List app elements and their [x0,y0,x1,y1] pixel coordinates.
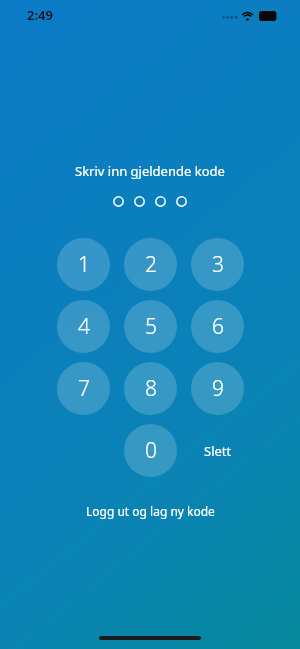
button[interactable]: Logg ut og lag ny kode [78,499,223,523]
button[interactable]: Slett [191,424,244,477]
staticText: 9 [212,374,224,403]
staticText: 6 [212,312,224,341]
staticText: 2:49 [27,6,53,24]
staticText: 5 [145,312,157,341]
staticText: 4 [78,312,90,341]
button[interactable]: 0 [124,424,177,477]
button[interactable]: 6 [191,300,244,353]
button[interactable]: 1 [57,238,110,291]
button[interactable]: 4 [57,300,110,353]
staticText: 2 [145,250,157,279]
staticText: 0 [145,436,157,465]
staticText: 3 [212,250,224,279]
staticText: Slett [204,442,232,460]
other: Battery [259,11,279,21]
button[interactable]: 2 [124,238,177,291]
staticText: Skriv inn gjeldende kode [75,162,225,180]
staticText: 7 [78,374,90,403]
staticText: 8 [145,374,157,403]
other: Wi-Fi [241,9,254,22]
other: Cellular signal [221,11,237,20]
button[interactable]: 9 [191,362,244,415]
button[interactable]: 8 [124,362,177,415]
button[interactable]: 3 [191,238,244,291]
button[interactable]: 5 [124,300,177,353]
staticText: Logg ut og lag ny kode [86,503,215,519]
staticText: 1 [78,250,90,279]
button[interactable]: 7 [57,362,110,415]
